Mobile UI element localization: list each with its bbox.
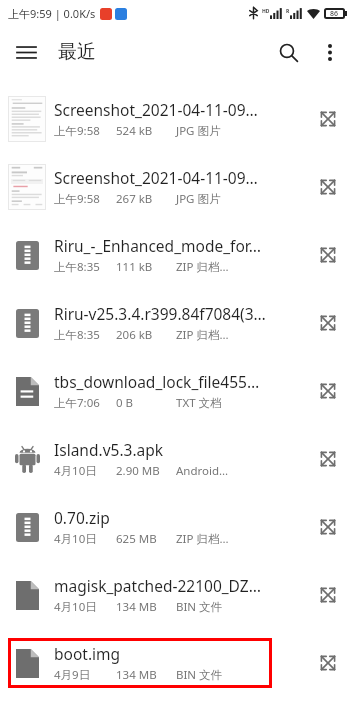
button[interactable]: Riru-v25.3.4.r399.84f7084(3… <box>0 289 354 357</box>
staticText: 111 kB <box>116 259 176 275</box>
staticText: Android… <box>176 463 229 479</box>
staticText: Island.v5.3.apk <box>54 439 164 460</box>
staticText: 上午7:06 <box>54 395 116 411</box>
button[interactable]: Riru_-_Enhanced_mode_for… <box>0 221 354 289</box>
staticText: R <box>286 8 290 15</box>
staticText: BIN 文件 <box>176 599 223 615</box>
staticText: 4月10日 <box>54 531 116 547</box>
staticText: 134 MB <box>116 599 176 615</box>
button[interactable]: Expand <box>302 297 354 349</box>
staticText: 最近 <box>58 40 96 64</box>
staticText: 86 <box>330 9 339 19</box>
staticText: 2.90 MB <box>116 463 176 479</box>
staticText: Riru_-_Enhanced_mode_for… <box>54 235 261 256</box>
staticText: TXT 文档 <box>176 395 222 411</box>
button[interactable]: 0.70.zip <box>0 493 354 561</box>
button[interactable]: Screenshot_2021-04-11-09… <box>0 85 354 153</box>
button[interactable]: Expand <box>302 501 354 553</box>
staticText: 206 kB <box>116 327 176 343</box>
staticText: boot.img <box>54 643 121 664</box>
staticText: 4月10日 <box>54 599 116 615</box>
button[interactable]: Screenshot_2021-04-11-09… <box>0 153 354 221</box>
staticText: 625 MB <box>116 531 176 547</box>
button[interactable]: Expand <box>302 229 354 281</box>
button[interactable]: Expand <box>302 637 354 689</box>
button[interactable]: Menu <box>6 32 46 72</box>
staticText: 上午8:35 <box>54 259 116 275</box>
staticText: 上午9:58 <box>54 191 116 207</box>
staticText: 134 MB <box>116 667 176 683</box>
staticText: magisk_patched-22100_DZ… <box>54 575 261 596</box>
staticText: ZIP 归档… <box>176 531 229 547</box>
staticText: 0 B <box>116 395 176 411</box>
staticText: tbs_download_lock_file455… <box>54 371 260 392</box>
staticText: Screenshot_2021-04-11-09… <box>54 99 258 120</box>
staticText: ZIP 归档… <box>176 327 229 343</box>
staticText: JPG 图片 <box>176 123 221 139</box>
staticText: Screenshot_2021-04-11-09… <box>54 167 258 188</box>
button[interactable]: boot.img <box>0 629 354 697</box>
staticText: 上午9:58 <box>54 123 116 139</box>
button[interactable]: Search <box>266 30 310 74</box>
button[interactable]: tbs_download_lock_file455… <box>0 357 354 425</box>
staticText: Riru-v25.3.4.r399.84f7084(3… <box>54 303 266 324</box>
button[interactable]: Expand <box>302 569 354 621</box>
button[interactable]: Expand <box>302 161 354 213</box>
staticText: HD <box>262 8 270 15</box>
staticText: 上午8:35 <box>54 327 116 343</box>
staticText: 4月9日 <box>54 667 116 683</box>
staticText: 267 kB <box>116 191 176 207</box>
button[interactable]: Expand <box>302 93 354 145</box>
button[interactable]: Expand <box>302 365 354 417</box>
button[interactable]: magisk_patched-22100_DZ… <box>0 561 354 629</box>
button[interactable]: Expand <box>302 433 354 485</box>
staticText: BIN 文件 <box>176 667 223 683</box>
staticText: 4月10日 <box>54 463 116 479</box>
button[interactable]: Island.v5.3.apk <box>0 425 354 493</box>
staticText: 上午9:59 | 0.0K/s <box>8 6 96 21</box>
staticText: 0.70.zip <box>54 507 110 528</box>
button[interactable]: More options <box>310 32 350 72</box>
staticText: 524 kB <box>116 123 176 139</box>
staticText: ZIP 归档… <box>176 259 229 275</box>
staticText: JPG 图片 <box>176 191 221 207</box>
